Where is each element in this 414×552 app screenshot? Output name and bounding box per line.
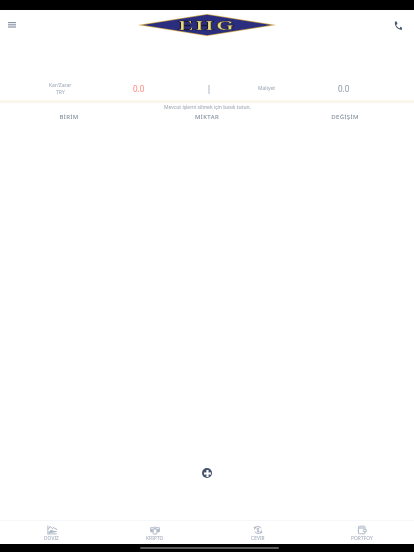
staticText: 0.0	[133, 83, 145, 94]
staticText: PORTFOY	[351, 535, 373, 542]
button[interactable]: DOVIZ	[0, 521, 103, 544]
button[interactable]: Menu	[0, 13, 24, 37]
staticText: BİRİM	[0, 113, 138, 121]
staticText: KRIPTO	[146, 535, 164, 542]
button[interactable]: Add	[202, 468, 212, 478]
button[interactable]: Call	[386, 14, 408, 36]
staticText: DEĞİŞİM	[276, 113, 414, 121]
staticText: TRY	[56, 89, 65, 96]
button[interactable]: PORTFOY	[310, 521, 414, 544]
staticText: Kar/Zarar	[49, 82, 72, 89]
staticText: MİKTAR	[138, 113, 276, 121]
staticText: EHG	[177, 16, 237, 34]
staticText: Mevcut işlemi silmek için basılı tutun.	[164, 104, 251, 111]
staticText: EHG	[177, 16, 237, 34]
staticText: 0.0	[338, 83, 350, 94]
button[interactable]: CEVIR	[206, 521, 310, 544]
button[interactable]: KRIPTO	[103, 521, 206, 544]
staticText: CEVIR	[251, 535, 265, 542]
staticText: DOVIZ	[44, 535, 59, 542]
staticText: Maliyet	[258, 85, 276, 92]
